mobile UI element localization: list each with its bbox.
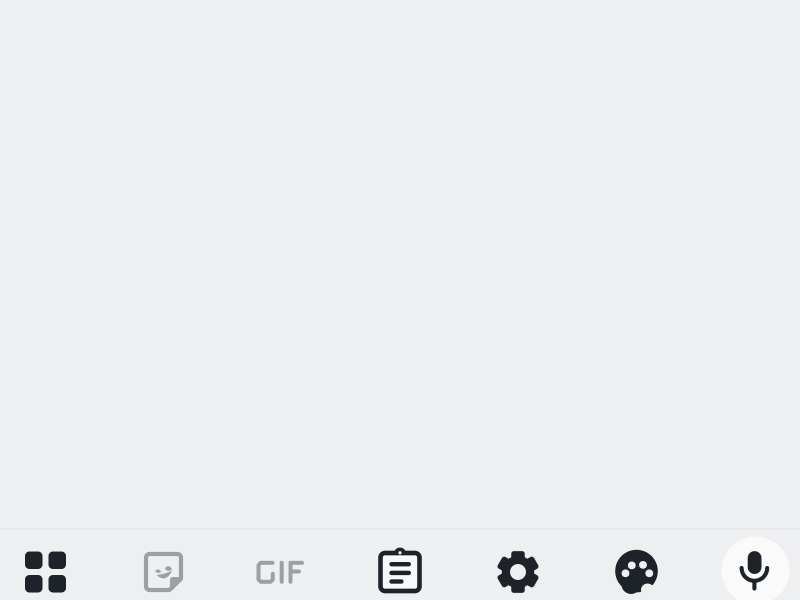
button[interactable]: Voice input bbox=[721, 536, 789, 600]
button[interactable]: Themes bbox=[581, 536, 691, 600]
button[interactable]: Clipboard bbox=[345, 529, 455, 600]
button[interactable]: Stickers bbox=[108, 536, 218, 600]
button[interactable]: GIF bbox=[226, 536, 336, 600]
button[interactable]: Settings bbox=[463, 536, 573, 600]
button[interactable]: Categories bbox=[0, 536, 91, 600]
